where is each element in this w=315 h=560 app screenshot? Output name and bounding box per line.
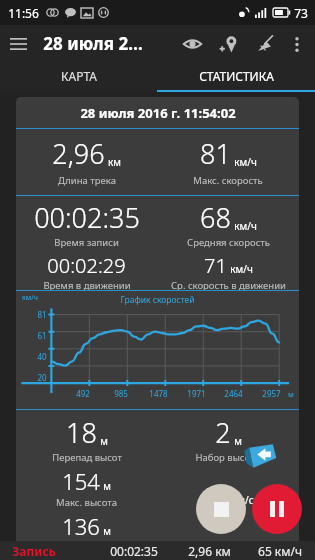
staticText: 1971 — [187, 388, 206, 399]
staticText: км/ч — [234, 155, 257, 169]
staticText: 2 — [215, 414, 231, 451]
staticText: 28 июля 2016 г. 11:54:02 — [80, 104, 236, 122]
staticText: 71 — [204, 252, 227, 279]
staticText: 154 — [62, 466, 100, 496]
staticText: м — [234, 434, 242, 448]
button[interactable]: Clear track — [248, 27, 281, 60]
staticText: 00:02:35 — [34, 199, 140, 236]
staticText: Время записи — [54, 236, 119, 249]
button[interactable]: Stop — [196, 484, 246, 534]
staticText: км/ч — [230, 262, 253, 276]
staticText: Перепад высот — [52, 451, 122, 464]
staticText: км/ч — [22, 293, 38, 303]
staticText: 18 — [66, 414, 97, 451]
staticText: м — [288, 389, 294, 399]
staticText: Макс. скорость — [193, 174, 263, 187]
staticText: 00:02:35 — [110, 543, 158, 559]
staticText: 40 — [37, 351, 47, 362]
staticText: м — [103, 524, 111, 538]
button[interactable]: Pause — [252, 484, 302, 534]
staticText: 65 км/ч — [258, 543, 302, 559]
staticText: 20 — [37, 372, 47, 383]
staticText: 2,96 км — [188, 543, 231, 559]
staticText: 61 — [37, 330, 47, 341]
button[interactable]: Add waypoint — [212, 27, 245, 60]
staticText: 73 — [294, 5, 308, 21]
staticText: Ср. скорость в движении — [171, 279, 286, 290]
staticText: м — [100, 434, 108, 448]
staticText: 985 — [114, 388, 128, 399]
staticText: КАРТА — [61, 68, 97, 84]
button[interactable]: Open navigation drawer — [0, 25, 37, 62]
staticText: Набор высоты — [195, 451, 262, 464]
staticText: 492 — [76, 388, 90, 399]
button[interactable]: СТАТИСТИКА — [157, 62, 315, 90]
button[interactable]: Show track — [176, 27, 209, 60]
staticText: 81 — [37, 309, 47, 320]
button[interactable]: More options — [282, 29, 312, 59]
staticText: м — [103, 479, 111, 493]
staticText: Время в движении — [43, 279, 131, 290]
staticText: 0.2 — [203, 480, 234, 510]
staticText: 68 — [200, 199, 231, 236]
staticText: 1478 — [149, 388, 168, 399]
staticText: Запись — [12, 543, 56, 559]
staticText: 136 — [62, 511, 100, 541]
staticText: Средняя скорость — [187, 236, 270, 249]
staticText: График скоростей — [120, 294, 195, 306]
staticText: км/ч — [234, 219, 257, 233]
staticText: м/с — [237, 493, 254, 507]
staticText: км — [108, 155, 121, 169]
staticText: 11:56 — [8, 5, 39, 21]
staticText: 2464 — [224, 388, 243, 399]
staticText: 2,96 — [52, 135, 105, 172]
staticText: Макс. высота — [56, 496, 117, 509]
staticText: 28 июля 2… — [43, 32, 143, 55]
staticText: Длина трека — [58, 174, 116, 187]
staticText: 2957 — [262, 388, 281, 399]
staticText: 00:02:29 — [47, 252, 126, 279]
staticText: СТАТИСТИКА — [199, 68, 274, 84]
button[interactable]: КАРТА — [0, 62, 157, 90]
staticText: 81 — [200, 135, 231, 172]
